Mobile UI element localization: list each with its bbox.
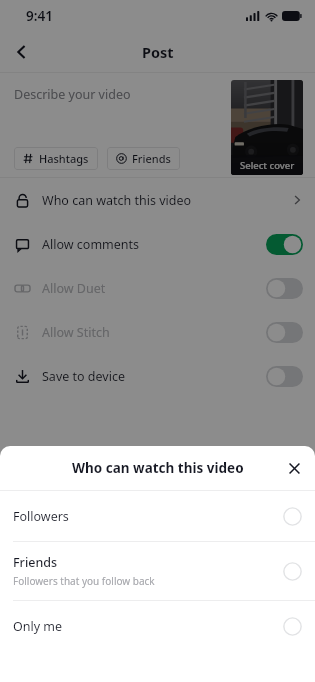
staticText: Allow comments <box>42 236 266 253</box>
button[interactable]: Allow comments <box>0 222 315 266</box>
button[interactable]: Only me <box>0 601 315 651</box>
staticText: Who can watch this video <box>42 192 291 209</box>
button[interactable]: Off <box>266 366 303 387</box>
staticText: Post <box>142 42 174 62</box>
button[interactable]: Allow Duet <box>0 266 315 310</box>
button[interactable]: Off <box>266 322 303 343</box>
button[interactable]: Close <box>273 447 315 489</box>
staticText: Select cover <box>240 159 295 172</box>
staticText: Describe your video <box>14 86 131 103</box>
button[interactable]: Friends <box>107 147 180 170</box>
button[interactable]: Allow Stitch <box>0 310 315 354</box>
staticText: Allow Duet <box>42 280 266 297</box>
staticText: 9:41 <box>26 7 53 25</box>
staticText: Followers <box>13 508 69 525</box>
staticText: Allow Stitch <box>42 324 266 341</box>
button[interactable]: Friends <box>0 542 315 600</box>
button[interactable]: Hashtags <box>14 147 98 170</box>
staticText: Friends <box>13 554 58 571</box>
button[interactable]: On <box>266 234 303 255</box>
button[interactable]: Off <box>266 278 303 299</box>
button[interactable]: Who can watch this video <box>0 178 315 222</box>
staticText: Followers that you follow back <box>13 574 155 588</box>
button[interactable]: Select cover <box>231 80 303 175</box>
button[interactable]: Followers <box>0 491 315 541</box>
button[interactable]: Back <box>0 32 44 72</box>
staticText: Friends <box>132 151 171 166</box>
staticText: Only me <box>13 618 63 635</box>
staticText: Hashtags <box>39 151 89 166</box>
button[interactable]: Save to device <box>0 354 315 398</box>
staticText: Who can watch this video <box>72 459 244 477</box>
staticText: Save to device <box>42 368 266 385</box>
